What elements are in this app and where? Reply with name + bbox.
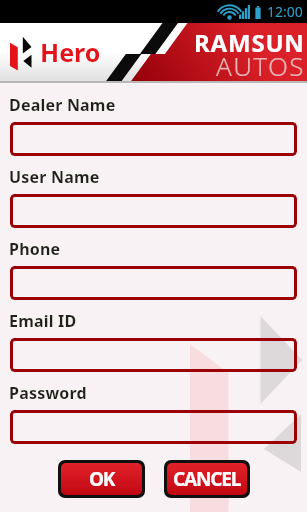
staticText: Email ID	[9, 310, 77, 332]
button[interactable]: OK	[61, 463, 142, 495]
button[interactable]	[10, 122, 297, 156]
staticText: OK	[89, 466, 115, 492]
staticText: AUTOS	[216, 48, 305, 83]
button[interactable]: CANCEL	[167, 463, 247, 495]
button[interactable]	[10, 266, 297, 300]
staticText: Dealer Name	[9, 94, 116, 116]
staticText: Password	[9, 382, 87, 404]
button[interactable]	[10, 194, 297, 228]
staticText: RAMSUN	[194, 26, 305, 59]
staticText: Hero	[40, 35, 101, 69]
button[interactable]	[10, 338, 297, 372]
staticText: Phone	[9, 238, 61, 260]
staticText: CANCEL	[173, 466, 241, 492]
staticText: User Name	[9, 166, 100, 188]
button[interactable]	[10, 410, 297, 444]
staticText: 12:00	[267, 2, 303, 21]
